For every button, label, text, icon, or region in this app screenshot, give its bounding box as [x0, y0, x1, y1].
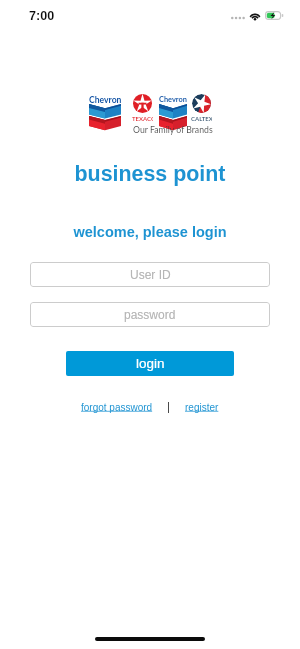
staticText: Our Family of Brands	[133, 124, 213, 134]
button[interactable]: register	[185, 402, 219, 413]
staticText: Chevron	[89, 95, 121, 105]
button[interactable]: forgot password	[81, 402, 153, 413]
staticText: password	[124, 308, 176, 321]
staticText: Chevron	[159, 95, 187, 104]
button[interactable]: User ID	[30, 262, 270, 287]
staticText: 7:00	[29, 9, 55, 23]
staticText: welcome, please login	[0, 224, 300, 240]
button[interactable]: password	[30, 302, 270, 327]
staticText: login	[136, 356, 165, 371]
button[interactable]: login	[66, 351, 234, 376]
staticText: TEXACO	[132, 115, 153, 122]
staticText: CALTEX	[191, 115, 212, 122]
staticText: User ID	[130, 268, 171, 281]
staticText: business point	[0, 162, 300, 186]
